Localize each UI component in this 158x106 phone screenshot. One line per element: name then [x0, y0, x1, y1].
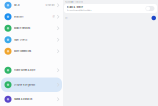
button[interactable]: Home screen & style: [1, 63, 62, 77]
staticText: MyNetwork: [45, 4, 55, 6]
button[interactable]: Sounds & vibration: [1, 92, 62, 106]
button[interactable]: Bluetooth: [1, 11, 62, 22]
staticText: Wi-Fi: [14, 4, 20, 7]
button[interactable]: More connections: [1, 45, 62, 57]
button[interactable]: Super Device: [1, 34, 62, 45]
button[interactable]: Black & white: [64, 4, 157, 13]
staticText: Screen shows only black and white: [66, 9, 91, 11]
staticText: Off: [52, 16, 55, 18]
button[interactable]: Display & brightness: [1, 77, 62, 92]
staticText: Mobile network: [14, 27, 30, 30]
staticText: Display & brightness: [14, 83, 35, 86]
staticText: Super Device: [14, 38, 27, 41]
staticText: Sounds & vibration: [14, 98, 32, 101]
staticText: Home screen & style: [14, 69, 35, 72]
staticText: More connections: [14, 50, 31, 53]
button[interactable]: Wi-Fi: [1, 0, 62, 11]
staticText: Accessibility features: [65, 1, 83, 3]
button[interactable]: Mobile network: [1, 22, 62, 34]
staticText: Black & white: [66, 6, 82, 9]
staticText: Off: [65, 17, 68, 19]
staticText: Bluetooth: [14, 15, 23, 18]
